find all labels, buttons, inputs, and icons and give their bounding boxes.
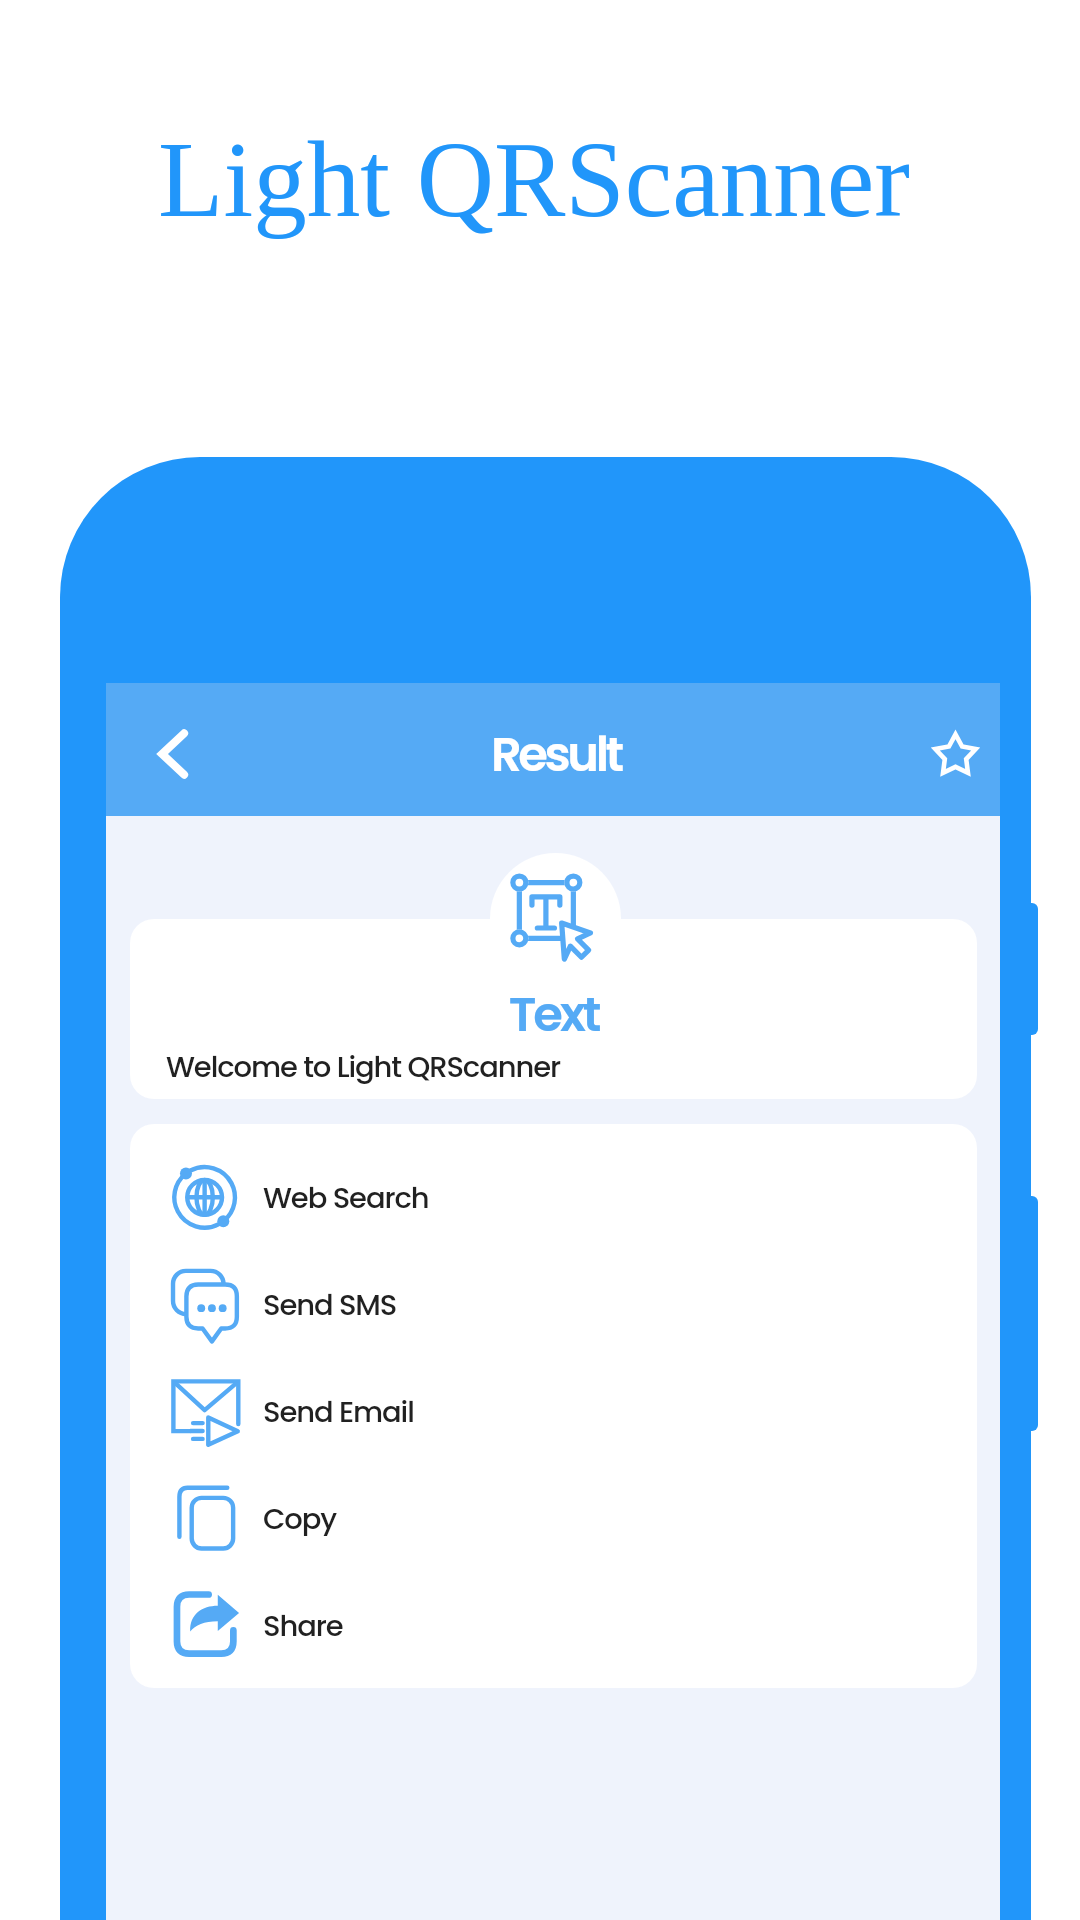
staticText: Send Email [263,1392,414,1433]
button[interactable]: Web Search [130,1145,977,1252]
button[interactable]: Send SMS [130,1252,977,1359]
staticText: Welcome to Light QRScanner [166,1047,560,1088]
button[interactable]: Send Email [130,1359,977,1466]
button[interactable]: Favorite [915,713,995,793]
staticText: Result [491,721,621,788]
staticText: Share [263,1606,343,1647]
button[interactable]: Share [130,1573,977,1680]
button[interactable]: Copy [130,1466,977,1573]
staticText: Light QRScanner [0,121,1074,239]
staticText: Copy [263,1499,337,1540]
button[interactable]: Back [134,714,214,794]
staticText: Text [130,981,977,1048]
staticText: Send SMS [263,1285,397,1326]
staticText: Web Search [263,1178,429,1219]
